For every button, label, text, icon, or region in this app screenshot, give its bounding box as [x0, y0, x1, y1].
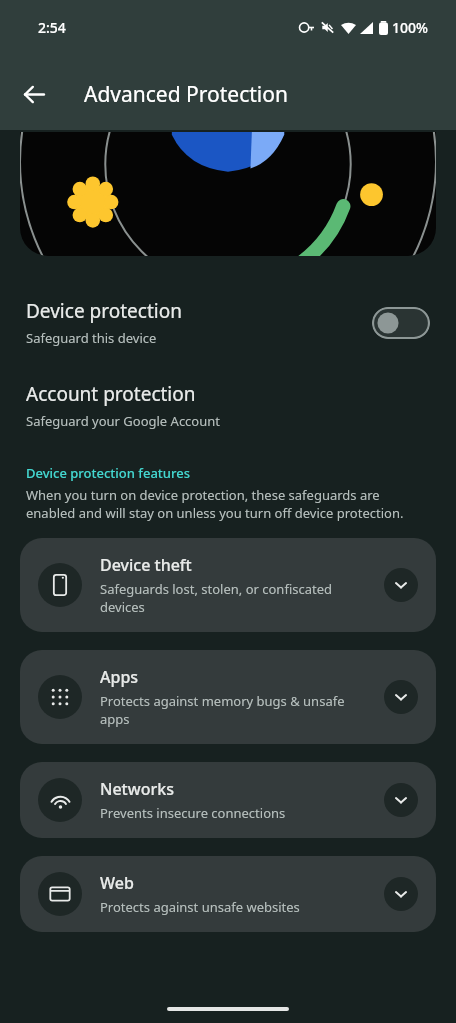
button[interactable]: Expand Apps — [384, 680, 418, 714]
button[interactable]: Back — [12, 72, 56, 116]
staticText: Web — [100, 872, 134, 894]
staticText: Device theft — [100, 554, 192, 576]
button[interactable]: Web — [20, 856, 436, 932]
button[interactable]: Device protection toggle — [372, 307, 430, 339]
button[interactable]: Account protection — [0, 381, 456, 430]
staticText: When you turn on device protection, thes… — [26, 486, 430, 522]
button[interactable]: Expand Web — [384, 877, 418, 911]
staticText: Safeguards lost, stolen, or confiscated … — [100, 580, 374, 616]
button[interactable]: Expand Networks — [384, 783, 418, 817]
staticText: Advanced Protection — [84, 80, 288, 109]
button[interactable]: Device theft — [20, 538, 436, 632]
staticText: 2:54 — [38, 18, 66, 37]
button[interactable]: Device protection — [0, 298, 456, 347]
staticText: Device protection features — [26, 464, 191, 482]
button[interactable]: Expand Device theft — [384, 568, 418, 602]
staticText: Protects against unsafe websites — [100, 898, 300, 916]
staticText: Account protection — [26, 381, 196, 407]
staticText: Device protection — [26, 298, 182, 324]
button[interactable]: Apps — [20, 650, 436, 744]
staticText: 100% — [392, 18, 428, 37]
staticText: Safeguard your Google Account — [26, 412, 220, 430]
staticText: Safeguard this device — [26, 329, 157, 347]
staticText: Networks — [100, 778, 174, 800]
staticText: Prevents insecure connections — [100, 804, 286, 822]
button[interactable]: Networks — [20, 762, 436, 838]
staticText: Apps — [100, 666, 139, 688]
staticText: Protects against memory bugs & unsafe ap… — [100, 692, 374, 728]
